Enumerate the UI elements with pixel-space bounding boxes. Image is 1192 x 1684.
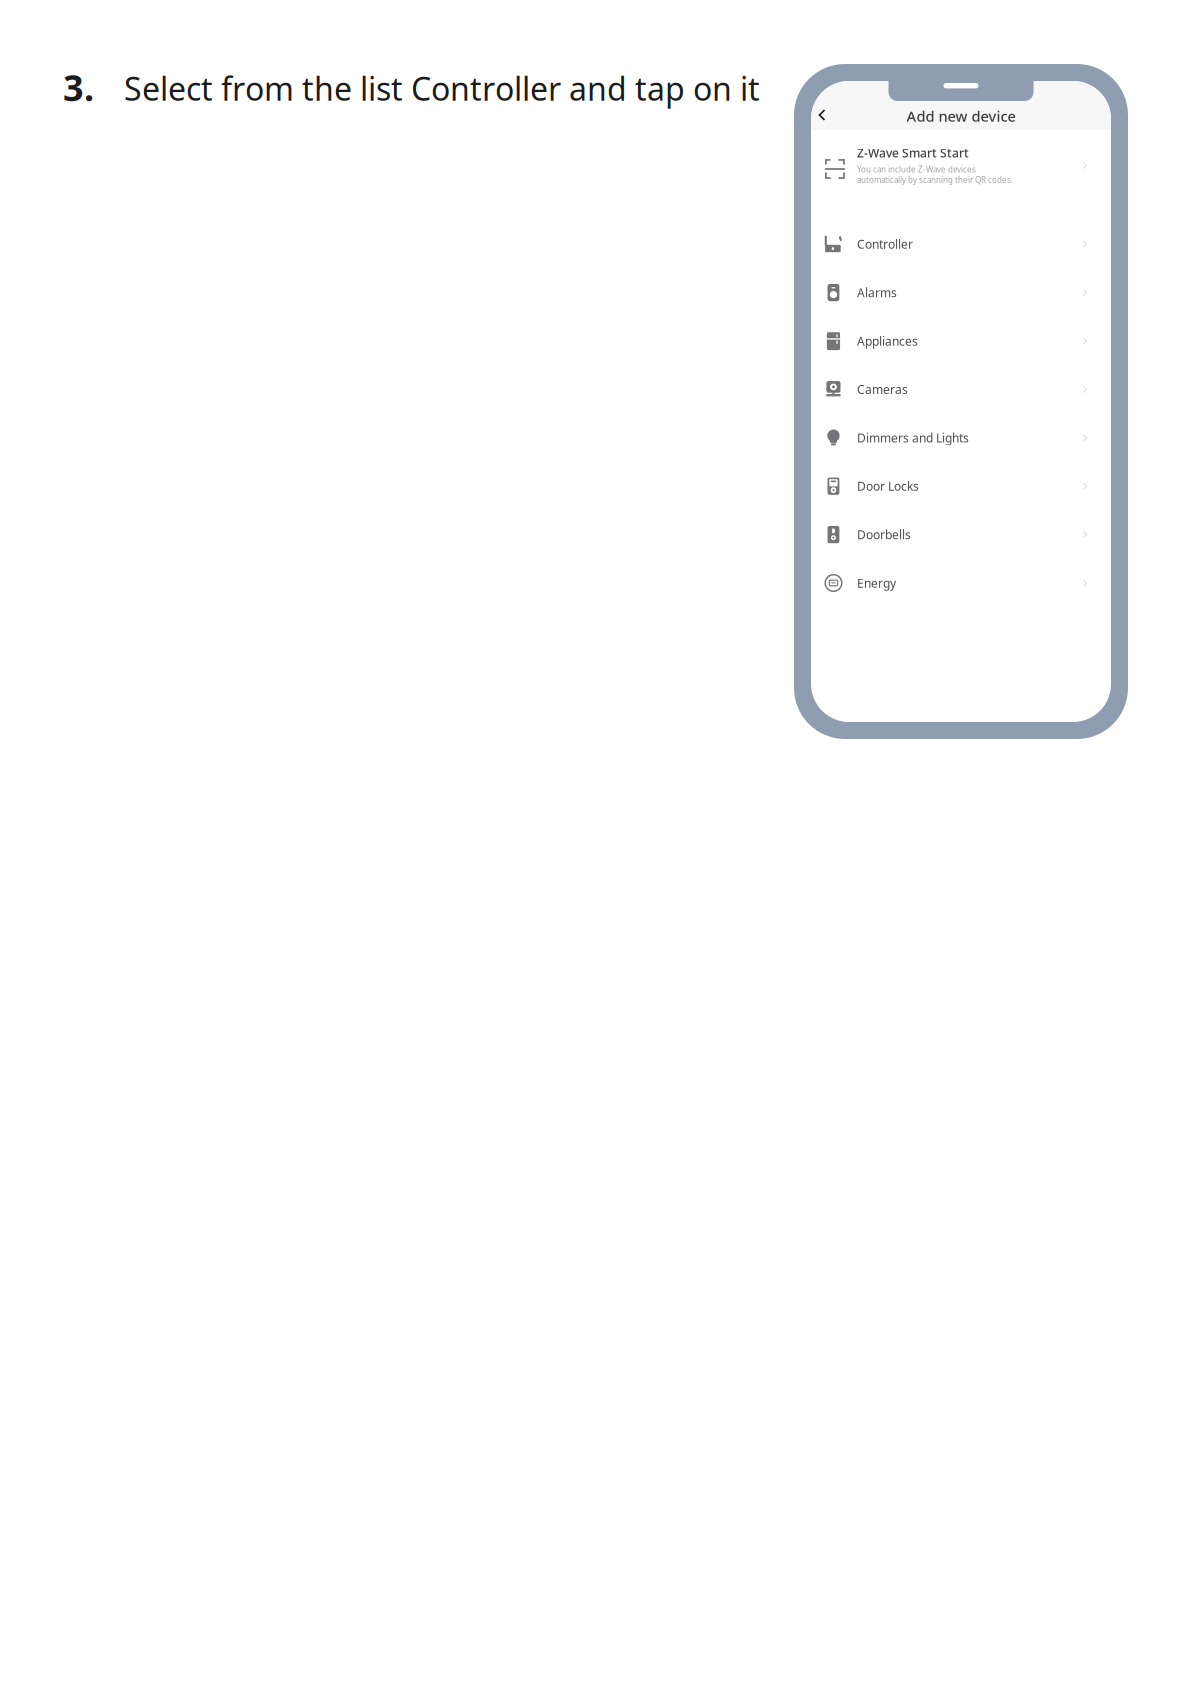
- button[interactable]: Dimmers and Lights: [811, 414, 1111, 462]
- button[interactable]: Door Locks: [811, 462, 1111, 510]
- staticText: Select from the list Controller and tap …: [124, 67, 760, 109]
- button[interactable]: Energy: [811, 559, 1111, 607]
- staticText: Cameras: [857, 381, 908, 397]
- button[interactable]: Controller: [811, 220, 1111, 268]
- button[interactable]: Doorbells: [811, 510, 1111, 559]
- staticText: Doorbells: [857, 527, 911, 542]
- button[interactable]: Cameras: [811, 365, 1111, 414]
- button[interactable]: Z-Wave Smart Start: [811, 138, 1111, 200]
- staticText: Alarms: [857, 285, 897, 300]
- staticText: Add new device: [906, 106, 1015, 126]
- button[interactable]: Back: [809, 102, 835, 128]
- staticText: Energy: [857, 575, 896, 591]
- staticText: Door Locks: [857, 478, 919, 494]
- staticText: You can include Z-Wave devices: [857, 164, 976, 175]
- staticText: 3.: [63, 63, 94, 111]
- staticText: Controller: [857, 236, 913, 252]
- staticText: automatically by scanning their QR codes…: [857, 174, 1013, 185]
- staticText: Z-Wave Smart Start: [857, 145, 969, 161]
- staticText: Dimmers and Lights: [857, 430, 969, 446]
- button[interactable]: Alarms: [811, 268, 1111, 317]
- staticText: Appliances: [857, 333, 918, 349]
- button[interactable]: Appliances: [811, 317, 1111, 365]
